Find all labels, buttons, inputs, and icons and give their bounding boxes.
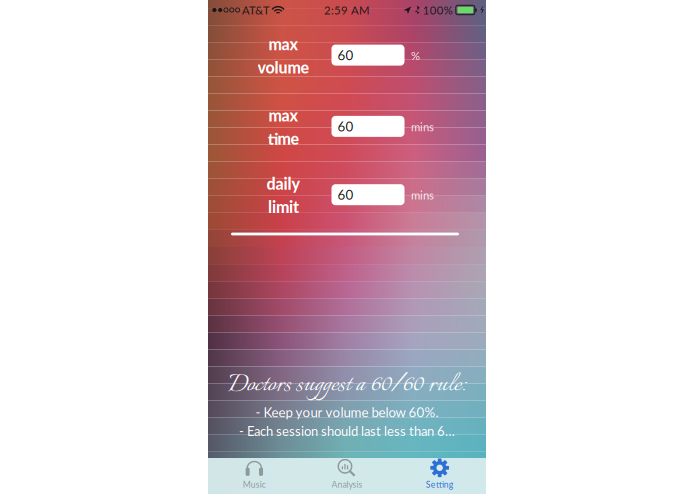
staticText: daily <box>266 174 300 193</box>
staticText: Music <box>243 479 266 490</box>
staticText: Doctors suggest a 60/60 rule: <box>228 366 466 404</box>
staticText: - Each session should last less than 6… <box>239 423 455 439</box>
staticText: 2:59 AM <box>324 3 370 17</box>
staticText: 60 <box>337 47 353 63</box>
staticText: max <box>268 34 298 54</box>
staticText: 60 <box>337 187 353 203</box>
staticText: limit <box>268 197 299 216</box>
staticText: 60 <box>337 118 353 134</box>
staticText: time <box>267 129 299 148</box>
button[interactable]: Setting <box>393 458 486 494</box>
staticText: max <box>268 106 298 125</box>
staticText: volume <box>257 58 309 77</box>
staticText: AT&T <box>242 3 270 17</box>
button[interactable]: 60 <box>331 45 404 66</box>
staticText: mins <box>411 120 434 134</box>
staticText: - Keep your volume below 60%. <box>255 404 438 420</box>
staticText: 100% <box>423 3 453 17</box>
button[interactable]: 60 <box>331 184 404 205</box>
staticText: % <box>411 49 420 62</box>
button[interactable]: 60 <box>331 116 404 137</box>
button[interactable]: Music <box>208 458 301 494</box>
staticText: Analysis <box>331 479 362 490</box>
staticText: mins <box>411 188 434 202</box>
staticText: Setting <box>426 479 454 490</box>
button[interactable]: Analysis <box>301 458 393 494</box>
